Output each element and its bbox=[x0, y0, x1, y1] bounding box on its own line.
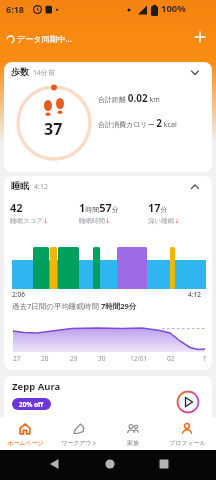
staticText: 27 bbox=[13, 354, 21, 363]
staticText: T bbox=[203, 354, 207, 363]
staticText: プロフィール bbox=[169, 439, 206, 447]
staticText: 29 bbox=[70, 354, 78, 363]
button[interactable] bbox=[190, 28, 210, 48]
button[interactable] bbox=[176, 390, 200, 414]
staticText: データ同期中... bbox=[17, 33, 72, 44]
staticText: 17分 bbox=[148, 200, 168, 215]
staticText: 合計距離 0.02 km bbox=[98, 91, 160, 105]
button[interactable]: ホームページ bbox=[0, 417, 51, 450]
staticText: 4:12 bbox=[188, 290, 201, 299]
staticText: 42 bbox=[10, 200, 23, 215]
staticText: 12/01 bbox=[130, 354, 148, 363]
staticText: 睡眠時間↓ bbox=[79, 217, 111, 225]
staticText: 睡眠スコア↓ bbox=[10, 217, 49, 225]
staticText: 37 bbox=[44, 118, 63, 140]
staticText: 合計消費カロリー 2 kcal bbox=[98, 116, 177, 130]
staticText: 02 bbox=[167, 354, 175, 363]
staticText: 1時間57分 bbox=[79, 200, 119, 215]
staticText: ホームページ bbox=[7, 439, 44, 447]
staticText: 2:06 bbox=[12, 290, 25, 299]
staticText: 6:18 bbox=[6, 3, 24, 15]
staticText: Zepp Aura bbox=[12, 380, 61, 393]
staticText: 30 bbox=[98, 354, 106, 363]
button[interactable]: 睡眠 bbox=[4, 176, 212, 370]
button[interactable]: 家族 bbox=[107, 417, 159, 450]
button[interactable]: Zepp Aura bbox=[4, 376, 212, 417]
staticText: 歩数 bbox=[11, 66, 29, 77]
staticText: 家族 bbox=[127, 439, 139, 447]
staticText: 深い睡眠↓ bbox=[148, 217, 180, 225]
staticText: 睡眠 bbox=[11, 180, 29, 191]
staticText: 100% bbox=[161, 2, 186, 15]
button[interactable]: ワークアウト bbox=[53, 417, 105, 450]
staticText: ワークアウト bbox=[61, 439, 98, 447]
staticText: 20% off bbox=[19, 400, 44, 409]
staticText: 28 bbox=[41, 354, 49, 363]
staticText: 4:12 bbox=[34, 182, 48, 192]
button[interactable]: 歩数 bbox=[4, 62, 212, 172]
staticText: 過去7日間の平均睡眠時間 7時間29分 bbox=[12, 301, 137, 311]
staticText: 14分前 bbox=[33, 68, 56, 78]
button[interactable]: プロフィール bbox=[161, 417, 213, 450]
